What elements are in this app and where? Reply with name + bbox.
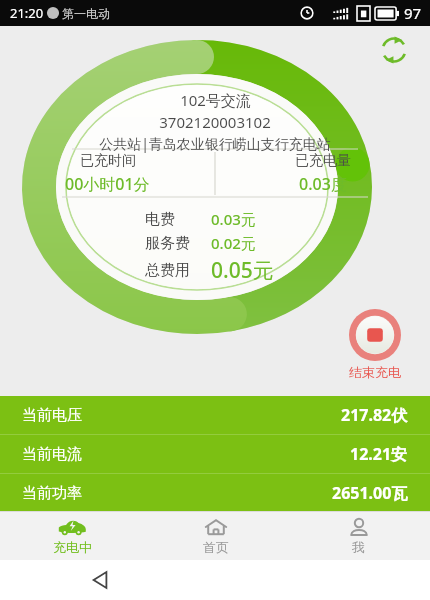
staticText: 0.03度: [299, 173, 347, 195]
staticText: 00小时01分: [65, 173, 150, 195]
staticText: 217.82伏: [341, 404, 408, 426]
button[interactable]: 当前功率: [0, 474, 430, 512]
other: 结束充电: [349, 309, 401, 361]
button[interactable]: Back: [78, 560, 122, 600]
staticText: 充电中: [53, 539, 92, 555]
button[interactable]: 首页: [144, 512, 287, 560]
staticText: 0.02元: [211, 233, 256, 253]
staticText: 公共站|青岛农业银行崂山支行充电站: [99, 134, 331, 153]
staticText: 当前电流: [22, 445, 82, 464]
staticText: 97: [404, 3, 422, 23]
staticText: 21:20: [10, 4, 44, 22]
button[interactable]: 当前电流: [0, 435, 430, 473]
staticText: 0.05元: [211, 256, 274, 285]
staticText: 已充时间: [80, 152, 136, 170]
staticText: 当前功率: [22, 484, 82, 503]
staticText: 当前电压: [22, 406, 82, 425]
staticText: 服务费: [145, 234, 190, 253]
button[interactable]: 结束充电: [345, 305, 405, 384]
staticText: 结束充电: [349, 364, 401, 380]
staticText: 0.03元: [211, 209, 256, 229]
staticText: 总费用: [145, 261, 190, 280]
staticText: 已充电量: [295, 152, 351, 170]
staticText: 2651.00瓦: [332, 482, 408, 504]
staticText: 电费: [145, 210, 175, 229]
button[interactable]: 我: [287, 512, 430, 560]
staticText: 我: [352, 539, 365, 555]
button[interactable]: Refresh: [376, 32, 412, 68]
staticText: 3702120003102: [159, 112, 271, 132]
staticText: 102号交流: [180, 90, 251, 110]
staticText: 12.21安: [350, 443, 408, 465]
button[interactable]: 当前电压: [0, 396, 430, 434]
staticText: 首页: [203, 539, 229, 555]
button[interactable]: 充电中: [0, 512, 144, 560]
staticText: 第一电动: [62, 6, 110, 21]
